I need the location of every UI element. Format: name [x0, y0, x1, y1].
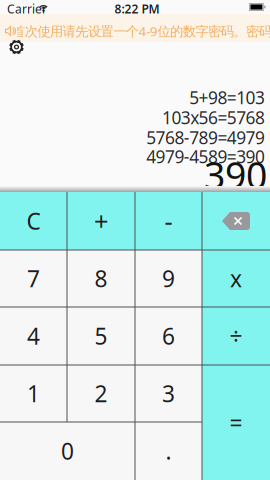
staticText: 8	[94, 263, 107, 293]
staticText: 390	[204, 150, 267, 200]
staticText: 8:22 PM	[114, 1, 159, 17]
staticText: 0	[61, 436, 74, 466]
staticText: 6	[162, 321, 175, 351]
staticText: 103x56=5768	[162, 106, 265, 129]
staticText: =	[229, 407, 242, 437]
button[interactable]	[5, 36, 27, 58]
staticText: 3	[162, 378, 175, 408]
button[interactable]: C	[0, 192, 67, 250]
staticText: 5+98=103	[189, 86, 265, 109]
button[interactable]: 7	[0, 250, 67, 307]
staticText: 2	[94, 378, 107, 408]
button[interactable]: .	[135, 422, 202, 480]
staticText: 7	[27, 263, 40, 293]
button[interactable]: 1	[0, 365, 67, 422]
button[interactable]: ÷	[202, 307, 270, 365]
staticText: x	[230, 263, 242, 293]
staticText: -	[164, 204, 172, 238]
staticText: Carrier	[7, 1, 47, 17]
staticText: C	[26, 206, 40, 236]
staticText: 9	[162, 263, 175, 293]
button[interactable]: 3	[135, 365, 202, 422]
button[interactable]: x	[202, 250, 270, 307]
button[interactable]: 0	[0, 422, 135, 480]
staticText: 4	[27, 321, 40, 351]
staticText: +	[94, 204, 108, 238]
button[interactable]: =	[202, 365, 270, 480]
button[interactable]: 6	[135, 307, 202, 365]
staticText: 5	[94, 321, 107, 351]
staticText: 1	[27, 378, 40, 408]
button[interactable]: -	[135, 192, 202, 250]
button[interactable]: 2	[67, 365, 135, 422]
staticText: .	[165, 436, 171, 466]
button[interactable]: 8	[67, 250, 135, 307]
button[interactable]: +	[67, 192, 135, 250]
staticText: 5768-789=4979	[146, 126, 265, 149]
button[interactable]	[202, 192, 270, 250]
staticText: 首次使用请先设置一个4-9位的数字密码。密码设置	[12, 22, 270, 40]
button[interactable]: 4	[0, 307, 67, 365]
staticText: ÷	[229, 321, 242, 351]
button[interactable]: 5	[67, 307, 135, 365]
button[interactable]: 9	[135, 250, 202, 307]
staticText: 4979-4589=390	[146, 145, 265, 168]
